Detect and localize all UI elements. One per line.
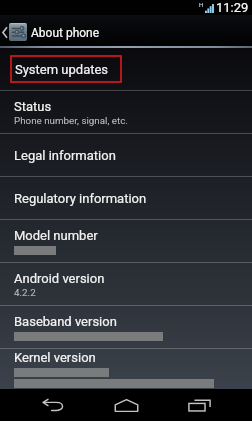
button[interactable]: Recent apps xyxy=(163,389,236,421)
staticText: H xyxy=(199,1,204,8)
staticText: Status xyxy=(14,99,52,114)
button[interactable]: Status xyxy=(0,91,252,133)
button[interactable]: Home xyxy=(90,389,163,421)
staticText: About phone xyxy=(31,26,100,40)
staticText: Phone number, signal, etc. xyxy=(14,115,128,126)
staticText: Kernel version xyxy=(14,350,96,365)
staticText: 4.2.2 xyxy=(14,287,36,298)
staticText: 11:29 xyxy=(216,0,249,15)
staticText: Android version xyxy=(14,271,105,286)
staticText: Regulatory information xyxy=(14,191,147,206)
button[interactable]: Baseband version xyxy=(0,306,252,348)
button[interactable]: Regulatory information xyxy=(0,177,252,219)
button[interactable]: About phone, navigate up xyxy=(0,15,252,46)
staticText: Legal information xyxy=(14,148,116,163)
button[interactable]: Kernel version xyxy=(0,349,252,389)
button[interactable]: Legal information xyxy=(0,134,252,176)
staticText: Baseband version xyxy=(14,314,117,329)
button[interactable]: System updates xyxy=(0,48,252,90)
button[interactable]: Back xyxy=(16,389,90,421)
staticText: Model number xyxy=(14,228,98,243)
button[interactable]: Model number xyxy=(0,220,252,262)
staticText: System updates xyxy=(15,62,109,77)
button[interactable]: Android version xyxy=(0,263,252,305)
